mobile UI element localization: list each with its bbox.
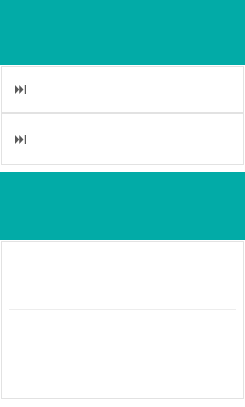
button[interactable]: Content card <box>1 241 244 399</box>
button[interactable]: Skip forward item 1 <box>1 66 244 113</box>
button[interactable]: Skip forward item 2 <box>1 113 244 165</box>
